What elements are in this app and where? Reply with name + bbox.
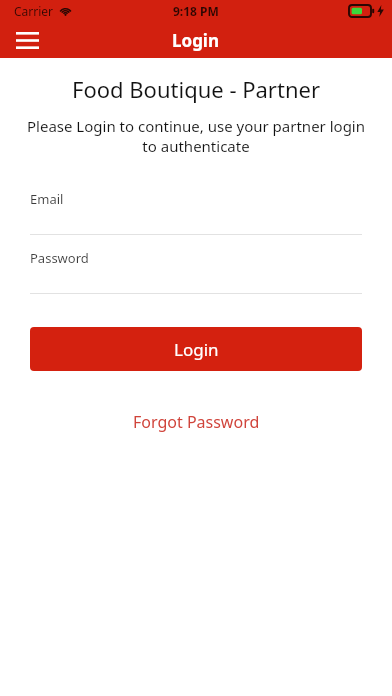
staticText: Food Boutique - Partner: [0, 74, 392, 104]
staticText: Carrier: [14, 3, 54, 19]
staticText: 9:18 PM: [173, 3, 219, 19]
button[interactable]: Forgot Password: [121, 407, 272, 437]
staticText: Forgot Password: [133, 411, 260, 433]
staticText: Email: [30, 190, 64, 208]
button[interactable]: Email: [30, 190, 362, 235]
staticText: Please Login to continue, use your partn…: [18, 116, 374, 156]
button[interactable]: Password: [30, 249, 362, 294]
button[interactable]: Open navigation menu: [10, 25, 44, 55]
staticText: Password: [30, 249, 89, 267]
staticText: Login: [172, 29, 220, 52]
button[interactable]: Login: [30, 327, 362, 371]
staticText: Login: [174, 338, 219, 361]
